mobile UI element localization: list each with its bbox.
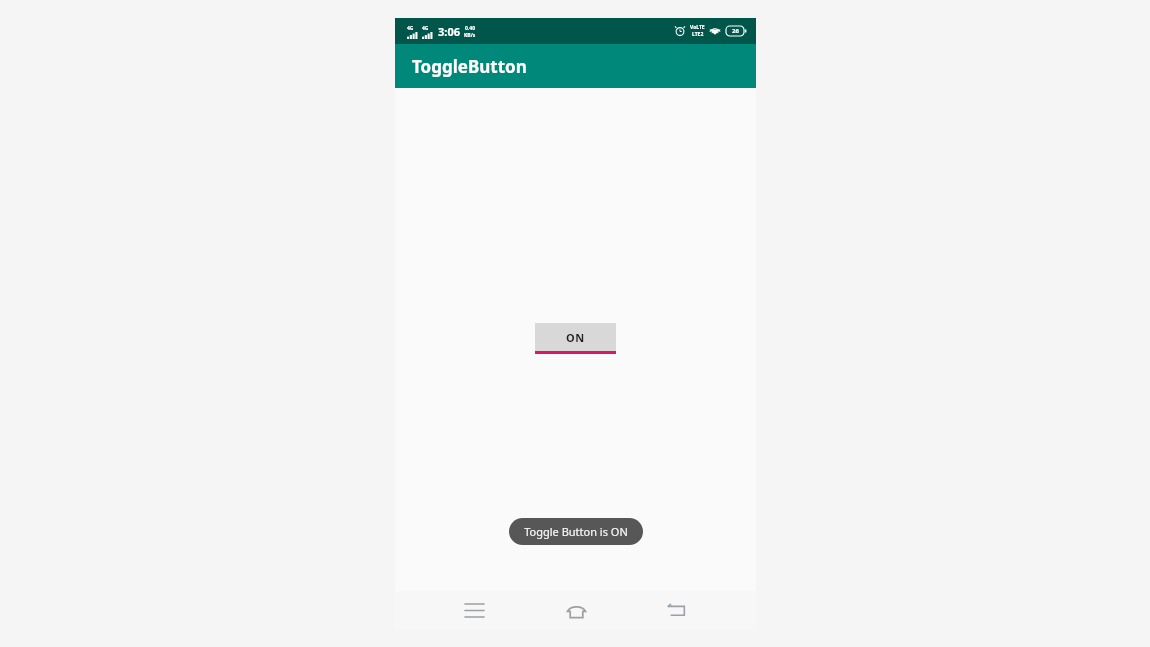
staticText: 4G xyxy=(407,25,414,32)
staticText: 4G xyxy=(422,25,429,32)
staticText: Toggle Button is ON xyxy=(524,524,628,539)
button[interactable]: ON xyxy=(535,323,616,354)
button[interactable]: Recents xyxy=(451,591,497,630)
staticText: KB/s xyxy=(464,32,476,39)
staticText: ToggleButton xyxy=(412,55,527,78)
staticText: VoLTE xyxy=(690,24,705,31)
staticText: 26 xyxy=(732,27,739,35)
button[interactable]: Home xyxy=(553,591,599,630)
staticText: 0.40 xyxy=(465,25,475,32)
button[interactable]: Back xyxy=(654,591,700,630)
staticText: 3:06 xyxy=(438,24,460,39)
staticText: ON xyxy=(566,330,585,345)
staticText: LTE2 xyxy=(692,31,704,38)
